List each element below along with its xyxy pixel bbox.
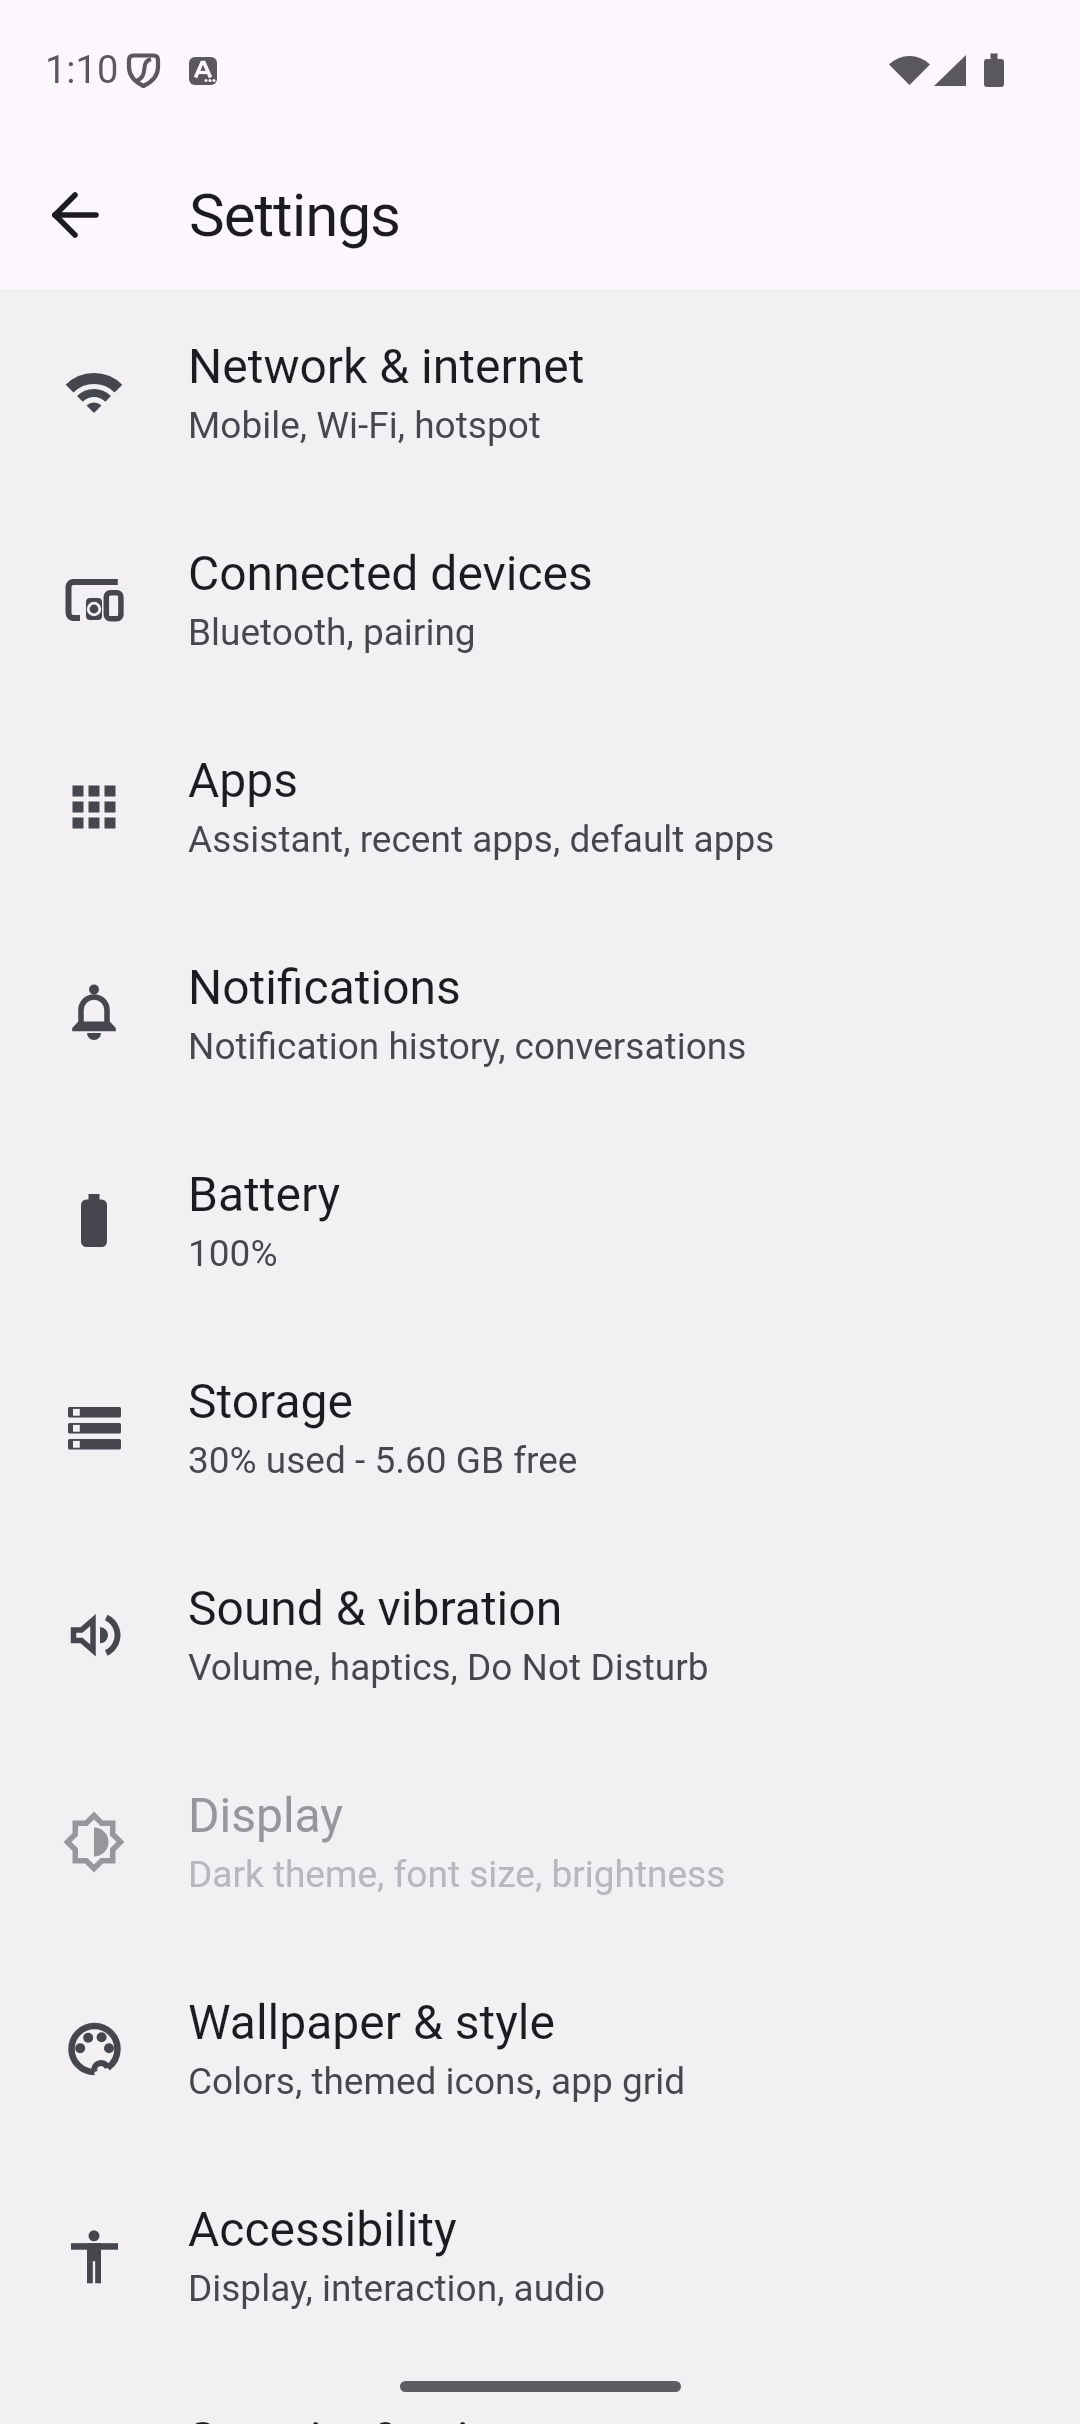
staticText: Notification history, conversations: [188, 1025, 747, 1068]
button[interactable]: Apps: [0, 703, 1080, 910]
button[interactable]: Notifications: [0, 910, 1080, 1117]
button[interactable]: Accessibility: [0, 2152, 1080, 2359]
button[interactable]: Sound & vibration: [0, 1531, 1080, 1738]
staticText: Notifications: [188, 959, 461, 1015]
staticText: Volume, haptics, Do Not Disturb: [188, 1646, 709, 1689]
button[interactable]: [400, 2381, 681, 2392]
button[interactable]: Display: [0, 1738, 1080, 1945]
button[interactable]: [51, 192, 99, 238]
staticText: 100%: [188, 1232, 278, 1275]
staticText: Connected devices: [188, 545, 593, 601]
button[interactable]: Battery: [0, 1117, 1080, 1324]
staticText: Wallpaper & style: [188, 1994, 555, 2050]
staticText: Colors, themed icons, app grid: [188, 2060, 686, 2103]
staticText: Network & internet: [188, 338, 585, 394]
staticText: Apps: [188, 752, 298, 808]
staticText: Sound & vibration: [188, 1580, 563, 1636]
staticText: Dark theme, font size, brightness: [188, 1853, 726, 1896]
staticText: Security & privacy: [188, 2411, 566, 2424]
staticText: 30% used - 5.60 GB free: [188, 1439, 578, 1482]
staticText: Storage: [188, 1373, 353, 1429]
staticText: Settings: [189, 180, 401, 250]
staticText: Display, interaction, audio: [188, 2267, 606, 2310]
staticText: Display: [188, 1787, 344, 1843]
staticText: Bluetooth, pairing: [188, 611, 476, 654]
staticText: Battery: [188, 1166, 341, 1222]
staticText: Accessibility: [188, 2201, 457, 2257]
button[interactable]: Connected devices: [0, 496, 1080, 703]
button[interactable]: Storage: [0, 1324, 1080, 1531]
button[interactable]: Network & internet: [0, 289, 1080, 496]
staticText: 1:10: [45, 48, 119, 93]
staticText: Assistant, recent apps, default apps: [188, 818, 775, 861]
staticText: Mobile, Wi-Fi, hotspot: [188, 404, 541, 447]
button[interactable]: Wallpaper & style: [0, 1945, 1080, 2152]
